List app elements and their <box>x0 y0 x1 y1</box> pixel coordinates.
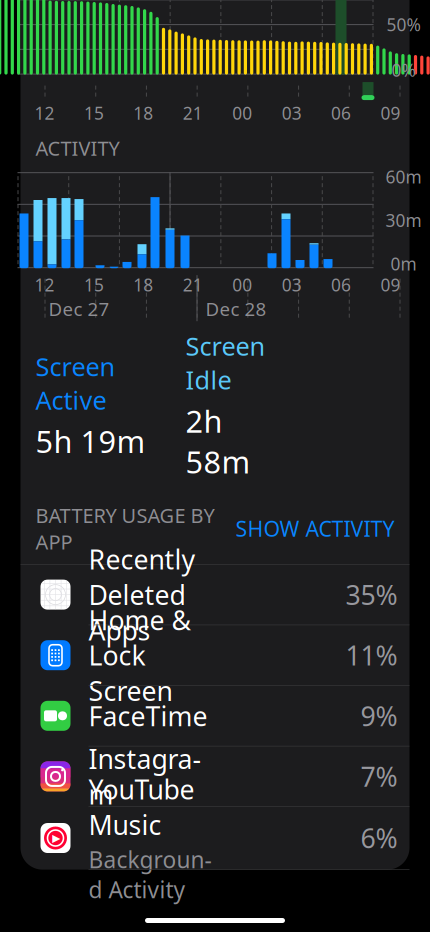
button[interactable]: SHOW ACTIVITY <box>235 514 394 543</box>
staticText: ACTIVITY <box>35 135 119 161</box>
staticText: 11% <box>345 637 397 673</box>
staticText: ▶ <box>52 832 60 844</box>
button[interactable]: Recently Deleted Apps <box>20 565 409 625</box>
staticText: Background Activity <box>88 844 211 904</box>
staticText: FaceTime <box>88 698 207 733</box>
staticText: YouTube Music <box>88 771 194 842</box>
staticText: 30m <box>385 209 421 232</box>
button[interactable]: Home & Lock Screen <box>20 625 409 685</box>
staticText: 2h 58m <box>185 400 250 482</box>
staticText: 9% <box>360 698 397 733</box>
staticText: 60m <box>385 165 421 188</box>
staticText: 5h 19m <box>35 421 145 461</box>
staticText: SHOW ACTIVITY <box>235 514 394 543</box>
staticText: 15 <box>84 102 104 125</box>
button[interactable]: Instagram <box>20 746 409 806</box>
staticText: 00 <box>232 273 252 296</box>
staticText: 18 <box>133 273 153 296</box>
staticText: 06 <box>331 273 351 296</box>
staticText: 7% <box>360 759 397 794</box>
staticText: 09 <box>380 273 400 296</box>
staticText: 03 <box>282 273 302 296</box>
staticText: 35% <box>345 577 397 612</box>
staticText: 09 <box>380 102 400 125</box>
staticText: Screen Idle <box>185 329 265 396</box>
button[interactable]: ▶ <box>20 807 409 869</box>
staticText: Screen Active <box>35 349 115 417</box>
staticText: 0m <box>390 252 416 275</box>
staticText: 6% <box>360 820 397 856</box>
staticText: 18 <box>133 102 153 125</box>
staticText: BATTERY USAGE BY APP <box>35 502 214 555</box>
button[interactable]: FaceTime <box>20 686 409 746</box>
staticText: 50% <box>386 13 420 36</box>
staticText: Dec 27 <box>48 296 109 321</box>
staticText: Home & Lock Screen <box>88 602 191 708</box>
staticText: 15 <box>84 273 104 296</box>
staticText: 12 <box>34 102 54 125</box>
staticText: 00 <box>232 102 252 125</box>
staticText: 21 <box>183 273 203 296</box>
staticText: Dec 28 <box>205 296 266 321</box>
staticText: 12 <box>34 273 54 296</box>
staticText: 03 <box>282 102 302 125</box>
staticText: Instagram <box>88 741 201 812</box>
staticText: 21 <box>183 102 203 125</box>
staticText: Recently Deleted Apps <box>88 541 195 648</box>
staticText: 06 <box>331 102 351 125</box>
staticText: 0% <box>391 59 415 82</box>
